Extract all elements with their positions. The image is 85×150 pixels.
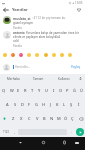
button[interactable]: H (40, 100, 47, 109)
button[interactable]: İ (75, 100, 82, 109)
staticText: Yorumlara bakıp da yazmadan önce bir bak… (26, 31, 85, 35)
button[interactable]: M (55, 114, 62, 123)
staticText: Ç (71, 116, 74, 121)
button[interactable]: Voice input (76, 74, 85, 83)
button[interactable]: T (29, 86, 36, 95)
staticText: , (14, 129, 15, 134)
staticText: Ö (64, 116, 68, 121)
button[interactable]: , (11, 127, 17, 136)
button[interactable]: Y (36, 86, 43, 95)
button[interactable]: Yanıtla (13, 44, 22, 48)
button[interactable]: Emoji reaction (51, 52, 57, 58)
button[interactable]: G (33, 100, 40, 109)
staticText: Ş (70, 102, 73, 107)
button[interactable]: R (22, 86, 29, 95)
button[interactable]: Q (0, 86, 8, 95)
button[interactable]: W (8, 86, 15, 95)
staticText: · 41 12 bir şey tamam bu (32, 16, 66, 20)
button[interactable]: A (3, 100, 11, 109)
staticText: P (66, 88, 69, 93)
button[interactable]: Back (2, 6, 10, 14)
button[interactable]: F (26, 100, 33, 109)
button[interactable]: X (17, 114, 25, 123)
button[interactable]: Ğ (71, 86, 78, 95)
button[interactable]: Emoji reaction (67, 52, 73, 58)
button[interactable]: E (15, 86, 22, 95)
staticText: antonio (13, 31, 25, 35)
button[interactable]: Emoji reaction (59, 52, 65, 58)
staticText: X (20, 116, 23, 121)
button[interactable]: K (54, 100, 61, 109)
button[interactable]: Tamam (26, 74, 51, 83)
button[interactable]: Z (9, 114, 17, 123)
button[interactable]: O (57, 86, 64, 95)
button[interactable]: Emoji reaction (34, 52, 40, 58)
staticText: C (28, 116, 31, 121)
button[interactable]: Emoji reaction (26, 52, 32, 58)
staticText: muslata_xt (13, 16, 31, 20)
staticText: Tamam (33, 77, 44, 81)
staticText: A (6, 102, 9, 107)
button[interactable]: I (50, 86, 57, 95)
staticText: B (43, 116, 46, 121)
staticText: . (71, 129, 72, 134)
button[interactable]: Ç (69, 114, 76, 123)
button[interactable]: U (43, 86, 50, 95)
button[interactable]: S (11, 100, 19, 109)
button[interactable]: Merhaba (0, 74, 26, 83)
button[interactable]: ?123 (0, 127, 11, 136)
button[interactable]: . (68, 127, 74, 136)
button[interactable]: Ş (68, 100, 75, 109)
button[interactable]: Hide keyboard (15, 137, 26, 148)
button[interactable]: Shift (0, 114, 9, 123)
staticText: J (50, 102, 52, 107)
button[interactable]: Recent apps (59, 137, 70, 148)
button[interactable]: B (41, 114, 48, 123)
staticText: güzel oynayın (13, 21, 33, 25)
button[interactable]: Switch keyboard (71, 137, 82, 148)
button[interactable]: Ö (62, 114, 69, 123)
button[interactable]: Emoji reaction (2, 52, 8, 58)
button[interactable]: muslata_xt (3, 16, 84, 30)
staticText: L (63, 102, 66, 107)
button[interactable]: P (64, 86, 71, 95)
staticText: coltl (13, 39, 19, 43)
button[interactable]: Send (74, 127, 85, 136)
staticText: S (14, 102, 17, 107)
staticText: H (42, 102, 45, 107)
button[interactable]: L (61, 100, 68, 109)
button[interactable]: Ü (78, 86, 85, 95)
staticText: Ü (80, 88, 83, 93)
button[interactable]: N (48, 114, 55, 123)
staticText: N (50, 116, 54, 121)
staticText: W (10, 88, 14, 93)
staticText: Ğ (73, 88, 76, 93)
staticText: I (53, 88, 55, 93)
button[interactable]: Emoji reaction (43, 52, 49, 58)
button[interactable]: Yanıtla (13, 26, 22, 30)
button[interactable]: Backspace (76, 114, 85, 123)
staticText: D (21, 102, 24, 107)
staticText: Y (38, 88, 41, 93)
staticText: K (56, 102, 59, 107)
button[interactable]: Kullanıcı (51, 74, 76, 83)
button[interactable]: Paylaş (71, 65, 81, 69)
staticText: Merhaba (7, 77, 20, 81)
staticText: 13:05 (75, 1, 83, 5)
button[interactable]: D (19, 100, 26, 109)
button[interactable]: antonio (3, 31, 85, 48)
button[interactable]: Emoji reaction (10, 52, 16, 58)
button[interactable]: J (47, 100, 54, 109)
button[interactable]: Share (75, 6, 83, 14)
button[interactable]: Home (38, 137, 49, 148)
staticText: elinde ve paylaşım alanı kolaylıkla2 (13, 35, 61, 39)
staticText: V (36, 116, 39, 121)
staticText: F (28, 102, 31, 107)
button[interactable]: Emoji reaction (18, 52, 24, 58)
staticText: R (24, 88, 27, 93)
button[interactable]: C (25, 114, 33, 123)
button[interactable]: V (33, 114, 41, 123)
staticText: G (35, 102, 38, 107)
staticText: M (57, 116, 61, 121)
